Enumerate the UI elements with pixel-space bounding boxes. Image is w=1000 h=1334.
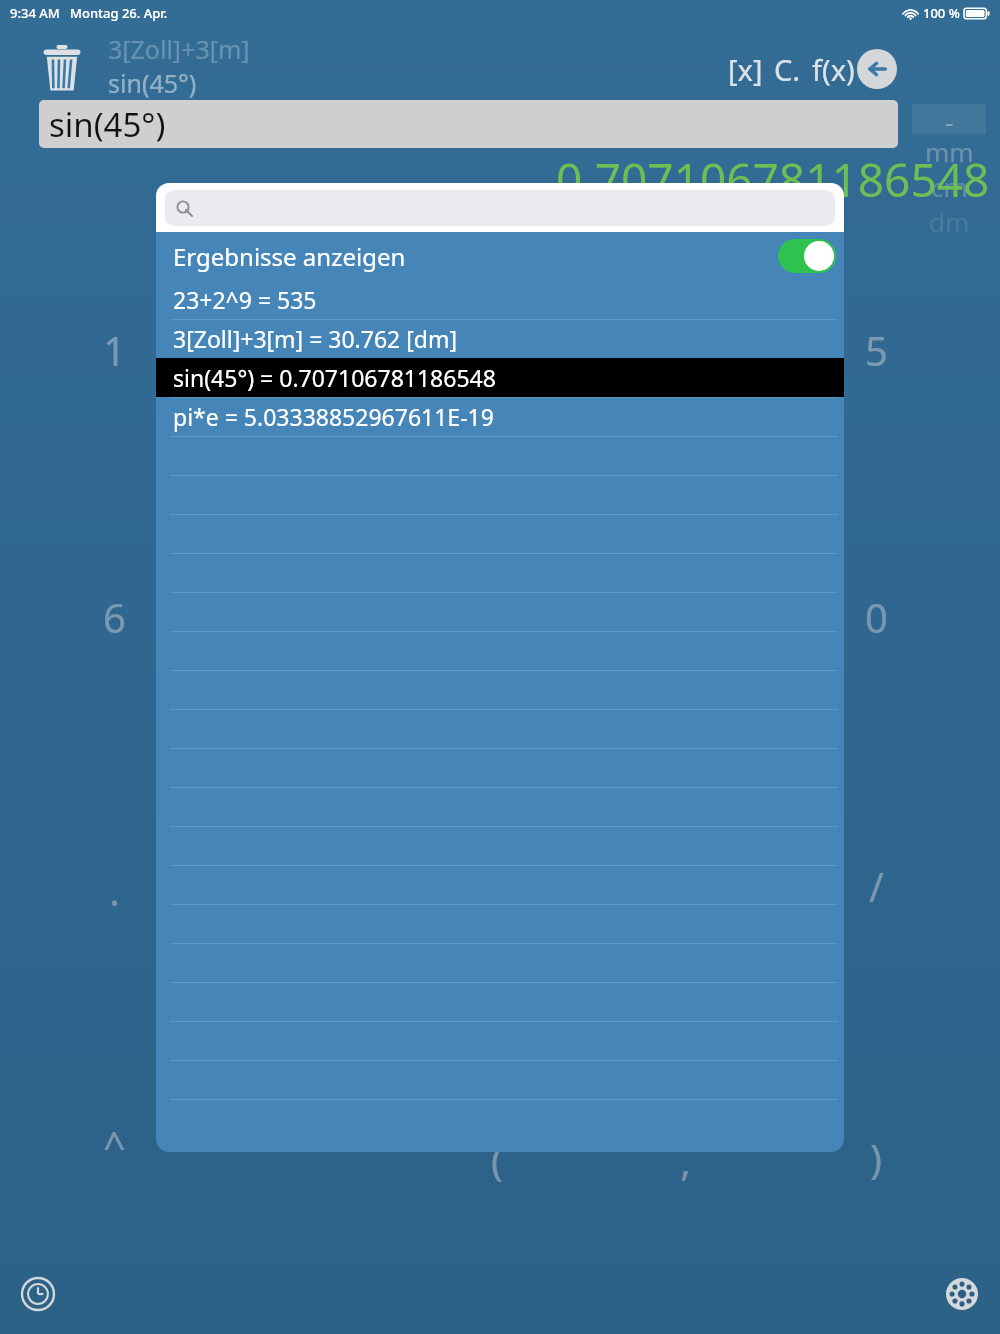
button[interactable]: ,	[645, 1130, 725, 1190]
button[interactable]	[156, 943, 844, 982]
button[interactable]: 23+2^9 = 535	[156, 280, 844, 319]
button[interactable]	[156, 670, 844, 709]
staticText: Ergebnisse anzeigen	[173, 240, 406, 273]
staticText: pi*e = 5.03338852967611E-19	[173, 401, 494, 432]
button[interactable]: Clear history	[36, 42, 88, 94]
button[interactable]	[156, 475, 844, 514]
staticText: sin(45°)	[49, 102, 166, 147]
staticText: cm	[931, 169, 968, 204]
button[interactable]: ^	[74, 1115, 154, 1175]
button[interactable]	[156, 826, 844, 865]
button[interactable]: )	[836, 1128, 916, 1188]
staticText: sin(45°)	[108, 66, 197, 100]
button[interactable]	[156, 1060, 844, 1099]
staticText: -	[945, 104, 954, 134]
button[interactable]: /	[836, 856, 916, 916]
staticText: pi*e	[108, 100, 158, 134]
button[interactable]	[156, 592, 844, 631]
staticText: [x]	[728, 50, 763, 89]
button[interactable]: C.	[772, 50, 803, 89]
staticText: mm	[925, 134, 974, 169]
staticText: ,	[680, 1133, 691, 1187]
staticText: (	[491, 1133, 503, 1187]
button[interactable]	[156, 982, 844, 1021]
button[interactable]	[156, 631, 844, 670]
button[interactable]: (	[457, 1130, 537, 1190]
staticText: 100 %	[923, 4, 960, 22]
button[interactable]: 3[Zoll]+3[m] = 30.762 [dm]	[156, 319, 844, 358]
staticText: /	[869, 859, 884, 913]
button[interactable]	[156, 436, 844, 475]
button[interactable]: sin(45°)	[39, 100, 898, 148]
staticText: 6	[103, 590, 126, 644]
button[interactable]: History	[22, 1278, 54, 1310]
staticText: dm	[929, 204, 970, 239]
staticText: 3[Zoll]+3[m]	[108, 32, 250, 66]
button[interactable]: Ergebnisse anzeigen	[156, 232, 844, 280]
staticText: 5	[865, 323, 888, 377]
button[interactable]: 6	[74, 587, 154, 647]
staticText: sin(45°) = 0.707106781186548	[173, 362, 496, 393]
staticText: ^	[103, 1118, 126, 1172]
button[interactable]: [x]	[726, 50, 765, 89]
button[interactable]	[778, 239, 836, 273]
button[interactable]	[156, 904, 844, 943]
button[interactable]	[156, 1021, 844, 1060]
staticText: 0	[865, 590, 888, 644]
button[interactable]: 1	[74, 320, 154, 380]
button[interactable]: 0	[836, 587, 916, 647]
staticText: C.	[774, 50, 801, 89]
button[interactable]	[156, 1099, 844, 1138]
button[interactable]	[156, 553, 844, 592]
button[interactable]: Back	[857, 49, 897, 89]
staticText: 9:34 AM	[10, 4, 60, 22]
button[interactable]	[156, 748, 844, 787]
button[interactable]	[156, 787, 844, 826]
button[interactable]: f(x)	[810, 50, 857, 89]
staticText: .	[109, 863, 120, 917]
staticText: f(x)	[812, 50, 855, 89]
staticText: Montag 26. Apr.	[70, 4, 168, 22]
staticText: 1	[103, 323, 126, 377]
staticText: 0.707106781186548	[556, 148, 990, 211]
button[interactable]	[165, 190, 835, 226]
button[interactable]: .	[74, 860, 154, 920]
button[interactable]: 5	[836, 320, 916, 380]
button[interactable]	[156, 709, 844, 748]
button[interactable]: pi*e = 5.03338852967611E-19	[156, 397, 844, 436]
button[interactable]	[156, 865, 844, 904]
button[interactable]	[156, 514, 844, 553]
button[interactable]: Settings	[946, 1278, 978, 1310]
staticText: 23+2^9 = 535	[173, 284, 317, 315]
button[interactable]: sin(45°) = 0.707106781186548	[156, 358, 844, 397]
staticText: )	[870, 1131, 882, 1185]
staticText: 3[Zoll]+3[m] = 30.762 [dm]	[173, 323, 458, 354]
